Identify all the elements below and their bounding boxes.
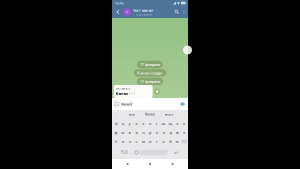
button[interactable]: Search	[173, 6, 181, 18]
button[interactable]: Send	[178, 98, 188, 110]
staticText: н	[149, 121, 151, 126]
staticText: Канал создан	[137, 70, 163, 76]
staticText: ?123	[121, 151, 128, 154]
staticText: и	[149, 139, 151, 144]
staticText: щ	[168, 121, 172, 126]
staticText: ⋮	[182, 112, 186, 117]
staticText: я	[122, 139, 124, 144]
staticText: ь	[162, 139, 164, 144]
staticText: о	[156, 130, 158, 135]
staticText: к	[135, 121, 137, 126]
staticText: Канал	[121, 101, 131, 107]
staticText: 1 подписчик	[133, 13, 152, 16]
staticText: 17 февраля	[140, 62, 160, 67]
staticText: у	[129, 121, 131, 126]
staticText: е	[142, 121, 144, 126]
staticText: л	[163, 130, 165, 135]
staticText: в	[129, 130, 131, 135]
staticText: 17 февраля	[140, 79, 160, 84]
staticText: г	[156, 121, 158, 126]
staticText: з	[176, 121, 178, 126]
staticText: 14:46	[114, 0, 123, 6]
staticText: Канал	[116, 91, 128, 96]
button[interactable]: More options	[181, 6, 187, 18]
staticText: й	[115, 121, 117, 126]
staticText: с	[135, 139, 137, 144]
staticText: ф	[114, 130, 117, 135]
staticText: ы	[121, 130, 124, 135]
staticText: Канал	[145, 113, 155, 116]
staticText: Текст канала:	[116, 87, 131, 90]
staticText: т	[156, 139, 158, 144]
staticText: ,	[130, 151, 131, 154]
staticText: а	[135, 130, 137, 135]
staticText: канал	[128, 113, 135, 116]
button[interactable]: Recent apps	[165, 159, 179, 169]
staticText: ц	[122, 121, 124, 126]
staticText: канала	[164, 113, 172, 116]
staticText: м	[142, 139, 145, 144]
button[interactable]: Home	[143, 159, 157, 169]
staticText: х	[183, 121, 185, 126]
button[interactable]: Тест канал	[131, 6, 153, 18]
staticText: ж	[176, 130, 179, 135]
staticText: п	[142, 130, 144, 135]
staticText: б	[169, 139, 171, 144]
staticText: ш	[162, 121, 166, 126]
staticText: э	[183, 130, 185, 135]
button[interactable]: Back	[113, 6, 123, 18]
staticText: д	[169, 130, 171, 135]
button[interactable]: Back	[120, 159, 134, 169]
staticText: сооб	[129, 92, 136, 95]
staticText: Тест канал	[133, 8, 153, 13]
staticText: ю	[175, 139, 178, 144]
staticText: ч	[129, 139, 131, 144]
staticText: р	[149, 130, 151, 135]
